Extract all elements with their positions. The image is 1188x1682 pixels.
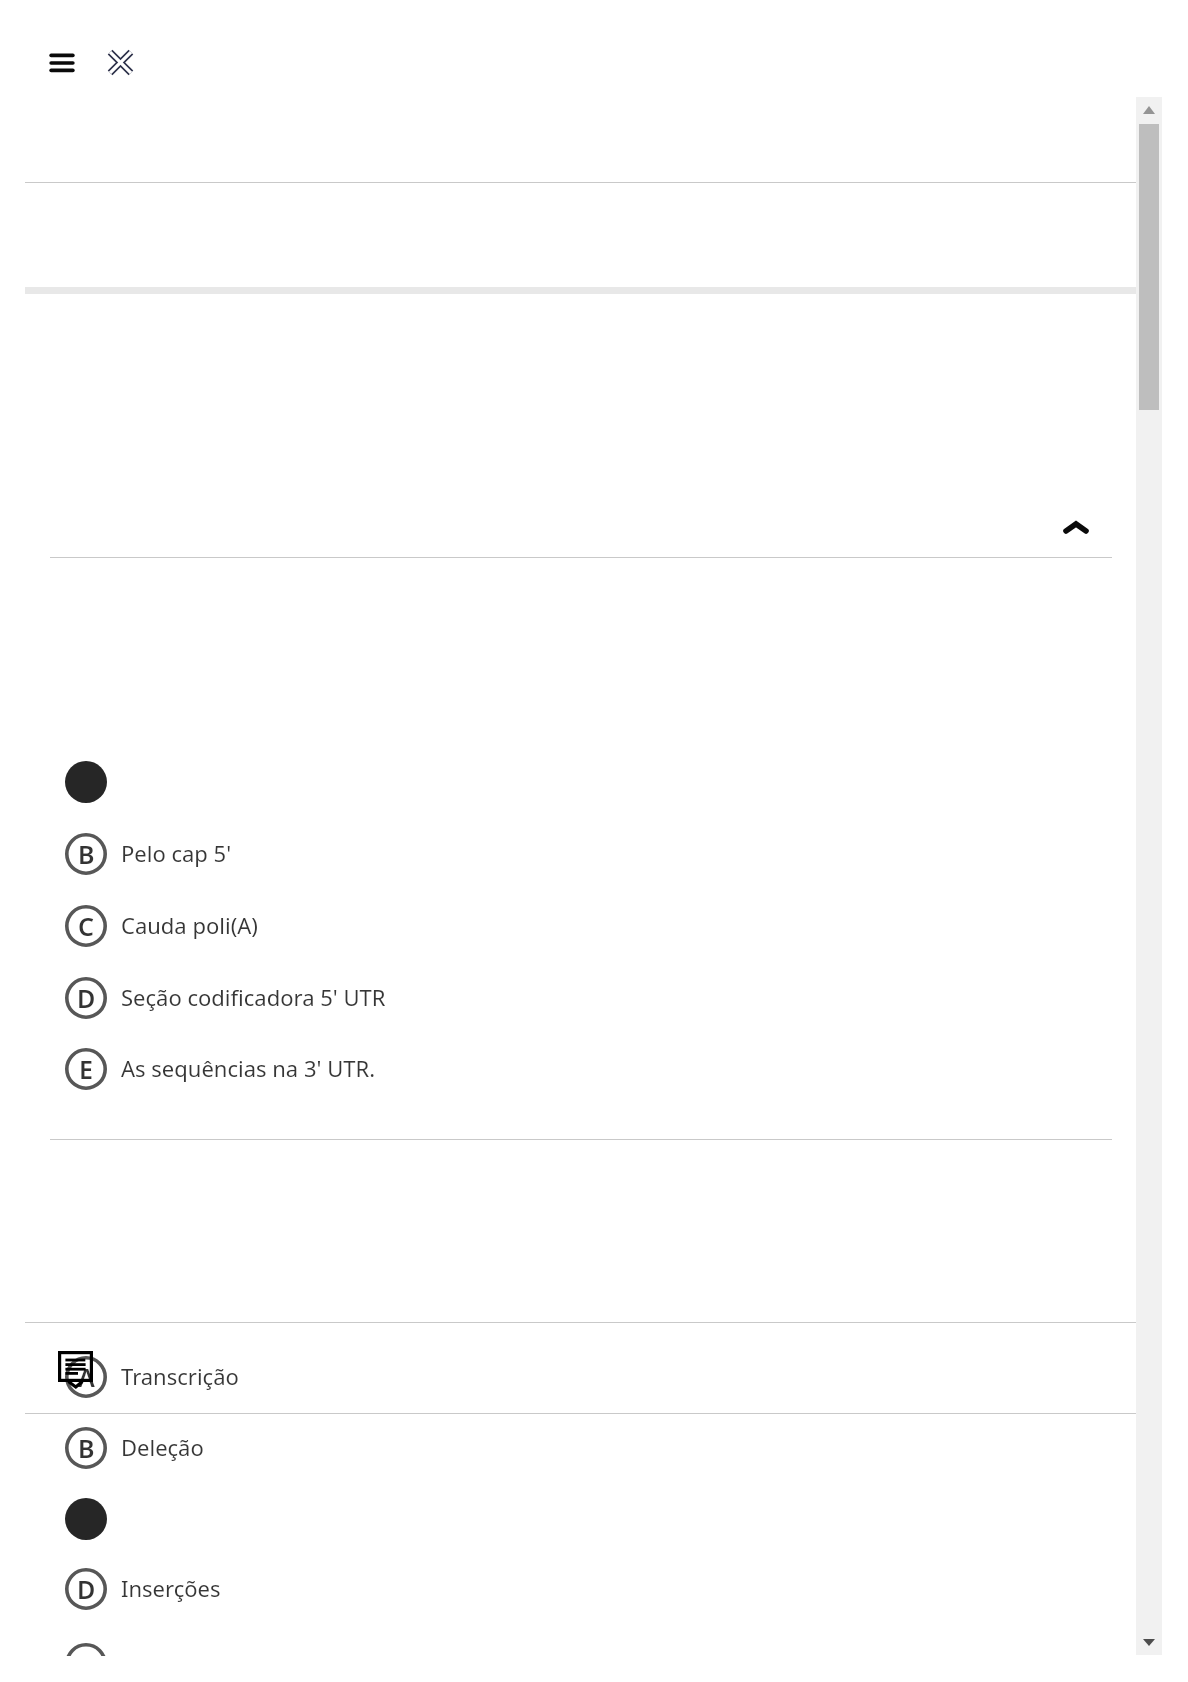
staticText: Deleção <box>121 1432 204 1462</box>
staticText: Transcrição <box>121 1361 239 1391</box>
staticText: B <box>78 837 95 871</box>
staticText: E <box>79 1647 93 1681</box>
staticText: Inserções <box>121 1573 221 1603</box>
staticText: Seção codificadora 5' UTR <box>121 982 386 1012</box>
staticText: As sequências na 3' UTR. <box>121 1053 376 1083</box>
staticText: C <box>78 909 94 943</box>
button[interactable]: Deleção <box>50 1413 1112 1483</box>
staticText: Cauda poli(A) <box>121 910 258 940</box>
button[interactable]: Seção codificadora 5' UTR <box>50 963 1112 1033</box>
button[interactable]: Transcrição <box>50 1342 1112 1412</box>
button[interactable]: Scroll down <box>1136 1629 1162 1655</box>
button[interactable]: Collapse <box>1053 504 1099 550</box>
button[interactable]: Scroll up <box>1136 97 1162 123</box>
button[interactable]: Cauda poli(A) <box>50 891 1112 961</box>
staticText: A <box>78 1360 95 1394</box>
staticText: Pelo cap 5' <box>121 838 232 868</box>
button[interactable]: Inserções <box>50 1554 1112 1624</box>
button[interactable]: Pelo cap 5' <box>50 819 1112 889</box>
staticText: E <box>79 1052 93 1086</box>
staticText: D <box>77 1572 96 1606</box>
button[interactable]: Close <box>98 40 142 84</box>
button[interactable]: Alternativa C <box>50 1484 1112 1554</box>
button[interactable]: Alternativa A <box>50 747 1112 817</box>
staticText: D <box>77 981 96 1015</box>
button[interactable]: Menu <box>40 41 84 85</box>
staticText: B <box>78 1431 95 1465</box>
button[interactable]: As sequências na 3' UTR. <box>50 1034 1112 1104</box>
